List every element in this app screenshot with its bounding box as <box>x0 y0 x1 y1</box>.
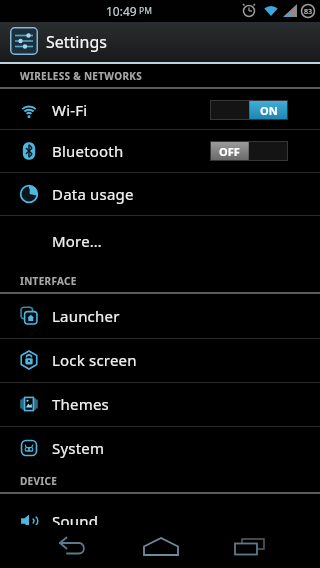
staticText: Wi-Fi <box>52 100 88 120</box>
staticText: WIRELESS & NETWORKS <box>20 69 143 83</box>
button[interactable]: System <box>0 426 320 470</box>
button[interactable]: Lock screen <box>0 338 320 382</box>
staticText: ON <box>260 103 278 118</box>
staticText: More… <box>52 231 102 251</box>
staticText: 83 <box>304 7 313 17</box>
button[interactable] <box>218 525 282 568</box>
button[interactable]: Bluetooth <box>0 130 320 172</box>
button[interactable]: Launcher <box>0 294 320 338</box>
staticText: Bluetooth <box>52 141 124 161</box>
button[interactable] <box>40 525 104 568</box>
staticText: Data usage <box>52 184 134 204</box>
staticText: OFF <box>219 144 240 159</box>
staticText: PM <box>139 5 152 17</box>
staticText: Lock screen <box>52 350 137 370</box>
staticText: 10:49 <box>106 3 137 19</box>
staticText: INTERFACE <box>20 274 77 288</box>
button[interactable]: Themes <box>0 382 320 426</box>
staticText: DEVICE <box>20 474 58 488</box>
staticText: Launcher <box>52 306 120 326</box>
button[interactable]: More… <box>0 220 320 262</box>
button[interactable]: Sound <box>0 499 320 543</box>
staticText: System <box>52 438 105 458</box>
staticText: Sound <box>52 511 99 531</box>
button[interactable] <box>129 525 193 568</box>
button[interactable]: Data usage <box>0 173 320 215</box>
button[interactable]: Wi-Fi <box>0 89 320 130</box>
staticText: Themes <box>52 394 109 414</box>
staticText: Settings <box>46 31 107 53</box>
